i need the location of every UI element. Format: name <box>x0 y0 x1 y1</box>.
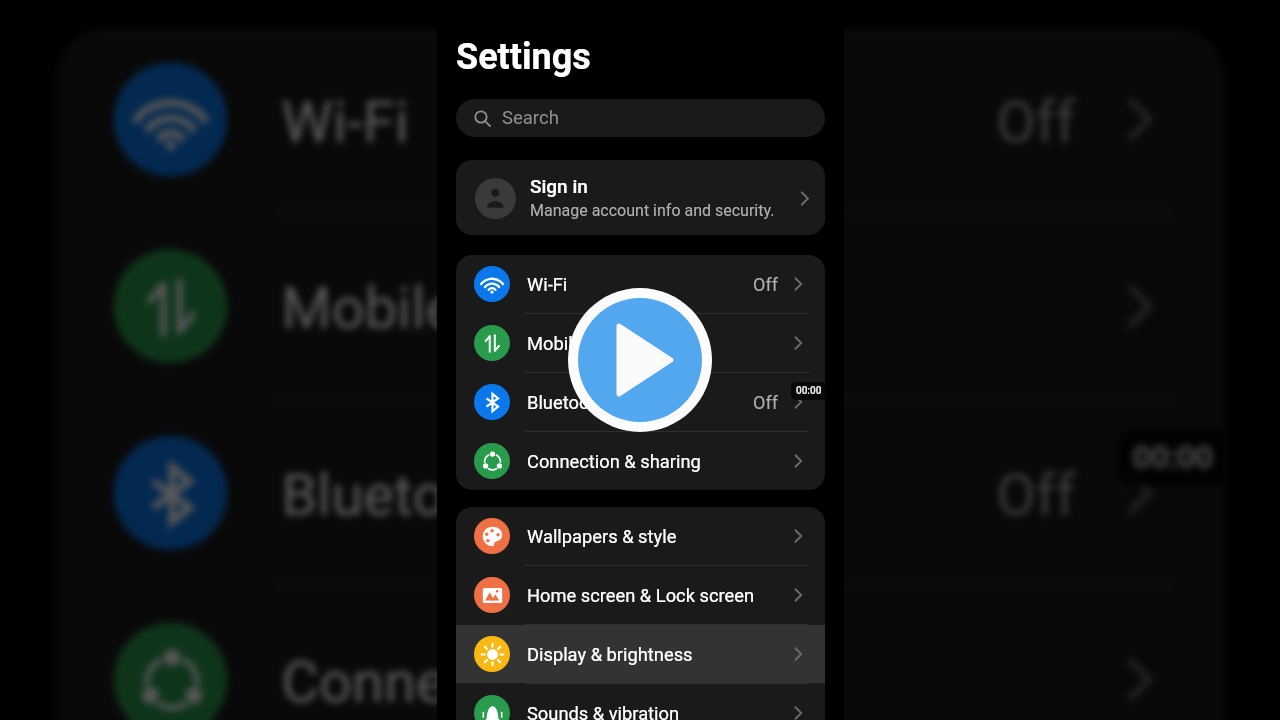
staticText: Mobile network <box>527 333 653 354</box>
staticText: Bluetooth <box>281 461 531 528</box>
staticText: Off <box>753 392 778 413</box>
staticText: Display & brightness <box>527 644 693 665</box>
staticText: Off <box>997 88 1076 154</box>
staticText: Off <box>997 461 1076 528</box>
staticText: Search <box>502 107 559 129</box>
staticText: Sign in <box>530 176 588 198</box>
button[interactable]: Display & brightness <box>456 625 825 683</box>
staticText: Bluetooth <box>527 392 606 413</box>
staticText: 00:00 <box>1133 439 1215 477</box>
button[interactable]: Mobile network <box>456 314 825 372</box>
staticText: Wallpapers & style <box>527 526 677 547</box>
button[interactable]: Sign in <box>456 160 825 235</box>
button[interactable]: Play <box>566 286 714 434</box>
button[interactable]: Wi-Fi <box>456 255 825 313</box>
staticText: Mobile network <box>281 274 680 341</box>
button[interactable]: Bluetooth <box>456 373 825 431</box>
staticText: 00:00 <box>796 385 822 397</box>
button[interactable]: Home screen & Lock screen <box>456 566 825 624</box>
staticText: Wi-Fi <box>281 88 411 154</box>
staticText: Off <box>753 274 778 295</box>
staticText: Settings <box>456 36 591 78</box>
staticText: Home screen & Lock screen <box>527 585 755 606</box>
staticText: Manage account info and security. <box>530 201 775 220</box>
staticText: Wi-Fi <box>527 274 568 295</box>
staticText: Sounds & vibration <box>527 703 680 720</box>
button[interactable]: Sounds & vibration <box>456 684 825 720</box>
staticText: Connection & sharing <box>281 648 832 714</box>
button[interactable]: Search <box>456 99 825 137</box>
button[interactable]: Connection & sharing <box>456 432 825 490</box>
button[interactable]: Wallpapers & style <box>456 507 825 565</box>
staticText: Connection & sharing <box>527 451 701 472</box>
